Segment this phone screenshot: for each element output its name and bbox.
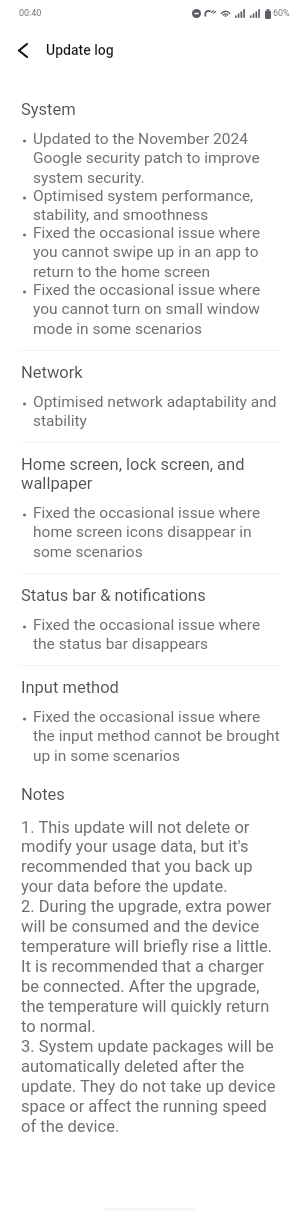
staticText: Status bar & notifications (21, 586, 279, 605)
staticText: Input method (21, 678, 279, 697)
staticText: System (21, 100, 279, 119)
staticText: Fixed the occasional issue where you can… (33, 281, 282, 338)
staticText: Network (21, 363, 279, 382)
staticText: 1. This update will not delete or modify… (21, 818, 281, 1136)
staticText: 00:40 (19, 8, 42, 19)
staticText: Fixed the occasional issue where you can… (33, 224, 282, 281)
staticText: Optimised system performance, stability,… (33, 187, 282, 224)
staticText: Notes (21, 785, 65, 804)
staticText: Home screen, lock screen, and wallpaper (21, 455, 279, 493)
staticText: Optimised network adaptability and stabi… (33, 393, 282, 430)
staticText: 60% (273, 8, 290, 19)
staticText: Fixed the occasional issue where the inp… (33, 708, 282, 765)
staticText: Fixed the occasional issue where home sc… (33, 504, 282, 561)
staticText: Fixed the occasional issue where the sta… (33, 616, 282, 653)
staticText: Updated to the November 2024 Google secu… (33, 130, 282, 187)
button[interactable]: Back (0, 26, 46, 74)
staticText: Update log (46, 42, 114, 58)
